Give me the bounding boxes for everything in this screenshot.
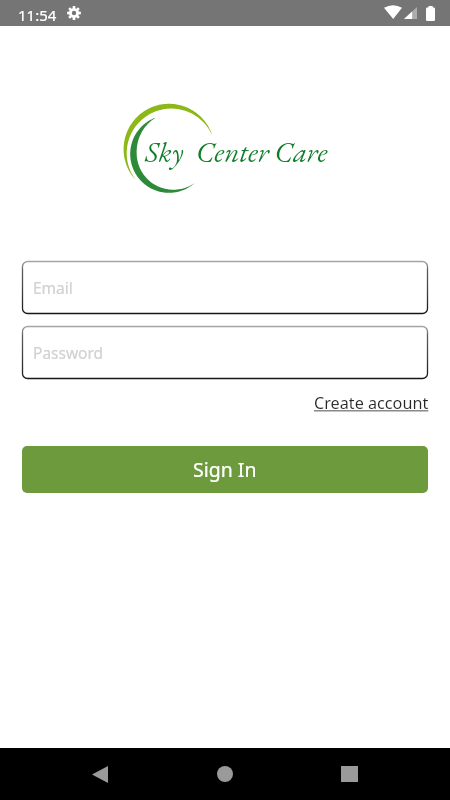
button[interactable]: Create account — [314, 392, 429, 414]
button[interactable]: Sign In — [22, 446, 428, 493]
button[interactable]: Recents — [326, 748, 373, 800]
staticText: 11:54 — [18, 5, 57, 25]
staticText: Sign In — [193, 456, 257, 483]
staticText: Password — [33, 342, 104, 363]
staticText: Email — [33, 277, 73, 298]
staticText: Sky — [145, 133, 184, 171]
button[interactable]: Back — [76, 748, 123, 800]
button[interactable]: Home — [201, 748, 248, 800]
staticText: Center Care — [196, 133, 328, 171]
button[interactable]: Email — [22, 261, 428, 314]
button[interactable]: Password — [22, 326, 428, 379]
staticText: Create account — [314, 392, 429, 414]
